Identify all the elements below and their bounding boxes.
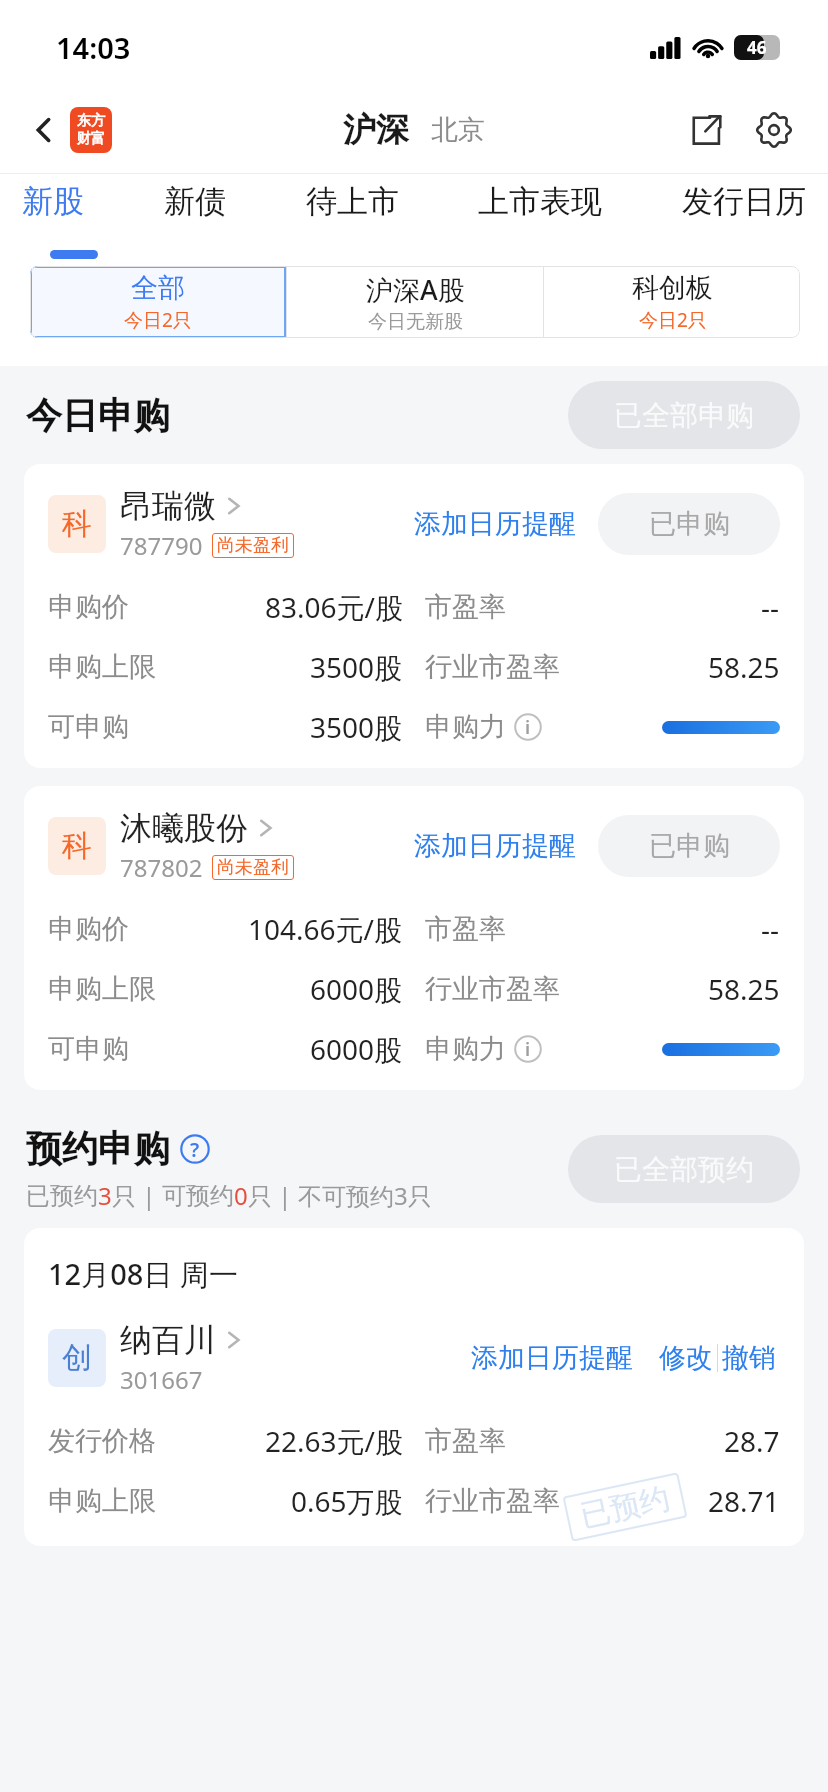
staticText: 科	[62, 505, 92, 543]
staticText: 0	[234, 1179, 248, 1212]
staticText: 83.06元/股	[265, 588, 403, 626]
staticText: 北京	[431, 113, 485, 147]
staticText: 301667	[120, 1363, 203, 1396]
staticText: i	[525, 1037, 531, 1062]
button[interactable]: 已申购	[598, 493, 780, 555]
button[interactable]: 发行日历	[682, 174, 806, 229]
staticText: 沪深	[343, 109, 409, 151]
staticText: --	[761, 588, 780, 626]
staticText: 可预约	[162, 1181, 234, 1211]
staticText: 22.63元/股	[265, 1422, 403, 1460]
staticText: 只 |	[248, 1179, 298, 1212]
staticText: 3500股	[310, 648, 403, 686]
staticText: 财富	[77, 130, 105, 148]
staticText: 行业市盈率	[425, 1484, 560, 1518]
staticText: 已预约	[577, 1479, 673, 1535]
staticText: 全部	[131, 271, 185, 305]
staticText: 已申购	[649, 829, 730, 863]
staticText: 科	[62, 827, 92, 865]
staticText: 发行价格	[48, 1424, 156, 1458]
button[interactable]: 科	[24, 786, 804, 1090]
staticText: 58.25	[708, 970, 780, 1008]
staticText: 已全部申购	[614, 398, 754, 433]
staticText: 沪深A股	[366, 271, 465, 308]
staticText: 申购上限	[48, 1484, 156, 1518]
button[interactable]: 沪深A股	[287, 266, 543, 338]
staticText: i	[525, 715, 531, 740]
button[interactable]: 新股	[22, 174, 84, 229]
staticText: 已申购	[649, 507, 730, 541]
staticText: 今日申购	[26, 393, 170, 438]
staticText: 申购力	[425, 710, 506, 744]
staticText: 市盈率	[425, 1424, 506, 1458]
staticText: 撤销	[722, 1341, 776, 1375]
button[interactable]: 待上市	[306, 174, 399, 229]
button[interactable]: 新债	[164, 174, 226, 229]
staticText: 申购力	[425, 1032, 506, 1066]
staticText: 东方	[77, 112, 105, 130]
staticText: 申购价	[48, 590, 129, 624]
staticText: 创	[62, 1339, 92, 1377]
staticText: 申购上限	[48, 650, 156, 684]
staticText: 待上市	[306, 182, 399, 221]
button[interactable]: Help	[180, 1134, 210, 1164]
staticText: 行业市盈率	[425, 650, 560, 684]
staticText: 申购价	[48, 912, 129, 946]
staticText: 添加日历提醒	[414, 507, 576, 541]
button[interactable]: 已全部申购	[568, 381, 800, 449]
button[interactable]: Share	[680, 104, 732, 156]
staticText: 只 |	[112, 1179, 162, 1212]
staticText: 添加日历提醒	[471, 1341, 633, 1375]
staticText: 行业市盈率	[425, 972, 560, 1006]
staticText: 787790	[120, 529, 203, 562]
staticText: 28.7	[724, 1422, 780, 1460]
button[interactable]: 修改	[655, 1341, 717, 1375]
staticText: 12月08日 周一	[48, 1254, 238, 1294]
staticText: 787802	[120, 851, 203, 884]
staticText: 市盈率	[425, 912, 506, 946]
button[interactable]: 添加日历提醒	[410, 503, 580, 545]
staticText: 尚未盈利	[217, 856, 289, 879]
button[interactable]: 12月08日 周一	[24, 1228, 804, 1546]
staticText: 市盈率	[425, 590, 506, 624]
staticText: 104.66元/股	[248, 910, 403, 948]
staticText: 今日2只	[639, 307, 707, 333]
button[interactable]: 已申购	[598, 815, 780, 877]
button[interactable]: 添加日历提醒	[410, 825, 580, 867]
staticText: 尚未盈利	[217, 534, 289, 557]
staticText: 今日无新股	[368, 310, 463, 334]
button[interactable]: 科	[24, 464, 804, 768]
staticText: 3500股	[310, 708, 403, 746]
button[interactable]: 上市表现	[478, 174, 602, 229]
staticText: --	[761, 910, 780, 948]
staticText: 46	[747, 36, 767, 59]
staticText: 申购上限	[48, 972, 156, 1006]
staticText: 已全部预约	[614, 1152, 754, 1187]
button[interactable]: 已全部预约	[568, 1135, 800, 1203]
staticText: 58.25	[708, 648, 780, 686]
button[interactable]: Settings	[748, 104, 800, 156]
staticText: 昂瑞微	[120, 486, 216, 526]
staticText: 0.65万股	[291, 1482, 403, 1520]
button[interactable]: 北京	[431, 113, 485, 147]
staticText: 已预约	[26, 1181, 98, 1211]
staticText: 新债	[164, 182, 226, 221]
staticText: 可申购	[48, 710, 129, 744]
staticText: 6000股	[310, 1030, 403, 1068]
staticText: 今日2只	[124, 307, 192, 333]
button[interactable]: 撤销	[718, 1341, 780, 1375]
staticText: 可申购	[48, 1032, 129, 1066]
staticText: 14:03	[56, 28, 131, 67]
button[interactable]: 添加日历提醒	[467, 1337, 637, 1379]
staticText: 不可预约3只	[298, 1179, 432, 1212]
button[interactable]: East Money	[70, 107, 112, 153]
staticText: 预约申购	[26, 1126, 170, 1171]
button[interactable]: 沪深	[343, 109, 409, 151]
button[interactable]: Back	[22, 108, 66, 152]
button[interactable]: 全部	[30, 266, 286, 338]
staticText: 上市表现	[478, 182, 602, 221]
staticText: 科创板	[632, 271, 713, 305]
staticText: 修改	[659, 1341, 713, 1375]
staticText: 沐曦股份	[120, 808, 248, 848]
button[interactable]: 科创板	[544, 266, 800, 338]
